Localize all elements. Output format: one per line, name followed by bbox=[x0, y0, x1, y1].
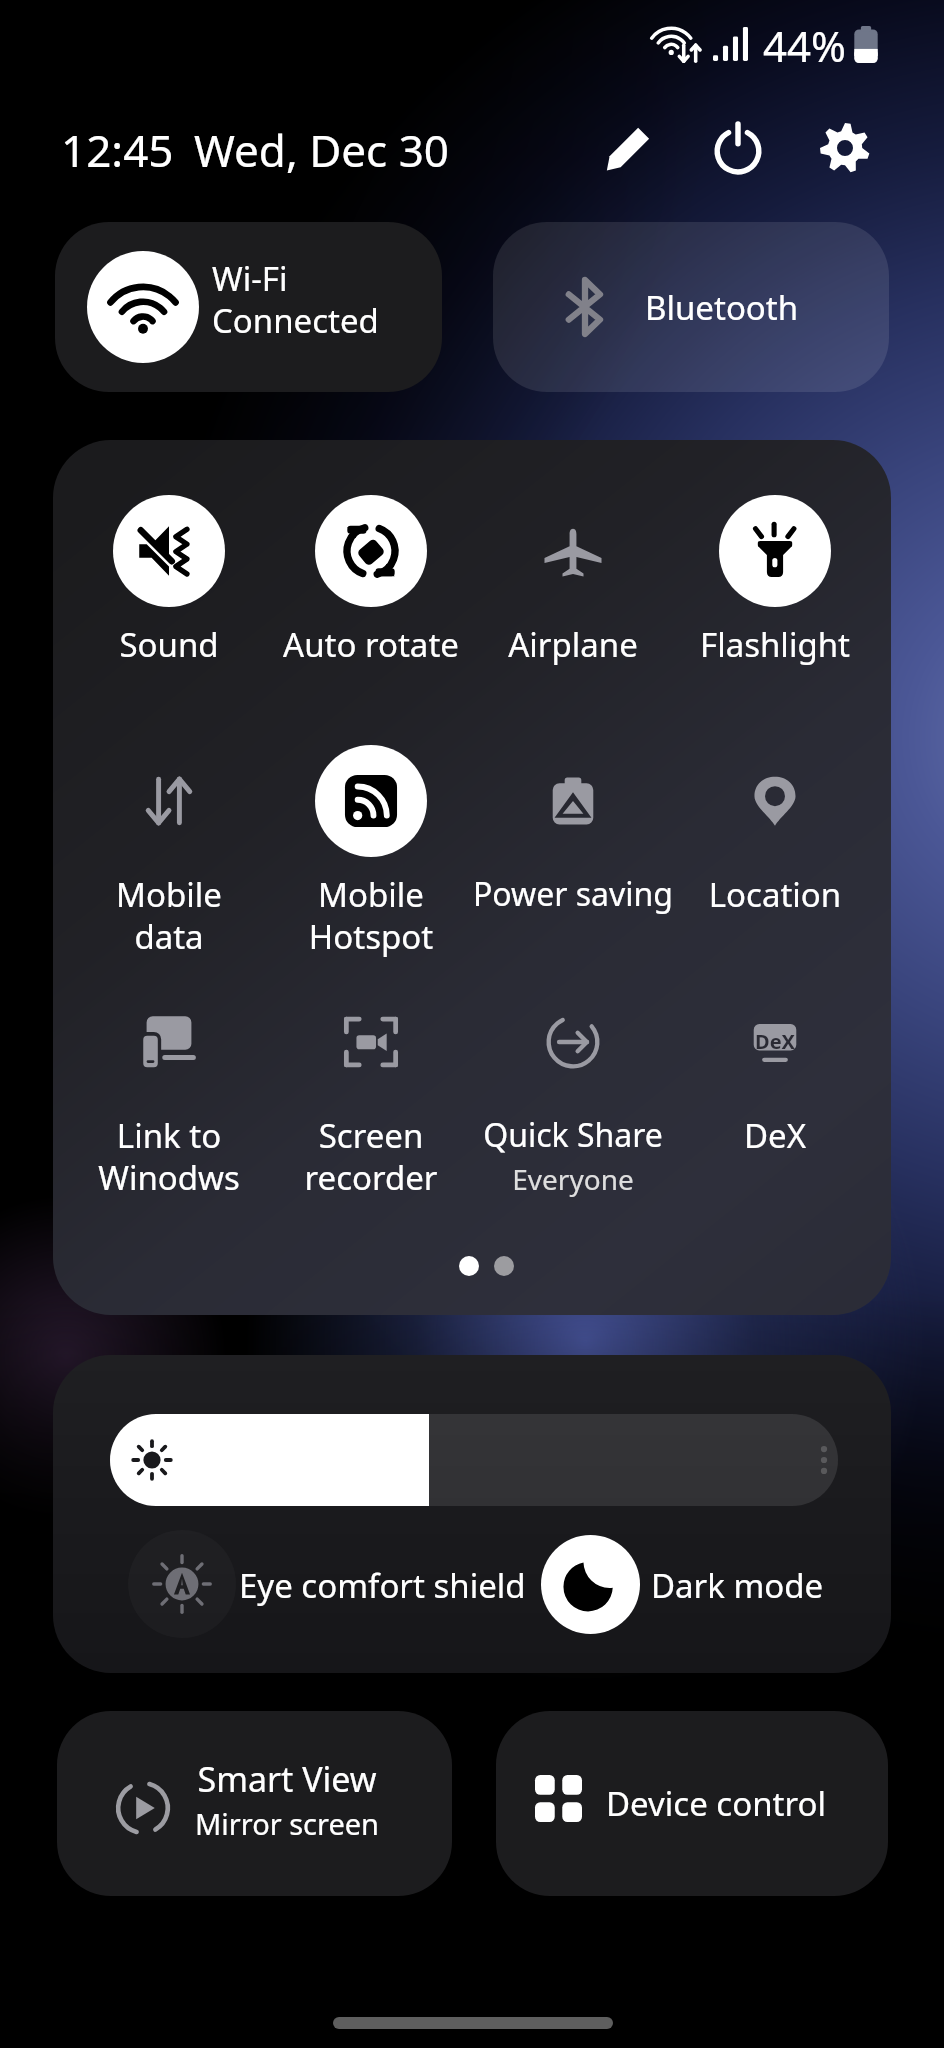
staticText: 12:45 bbox=[61, 120, 221, 180]
staticText: Mirror screen bbox=[167, 1804, 407, 1843]
staticText: Airplane bbox=[458, 622, 688, 667]
button[interactable]: Edit quick settings bbox=[580, 100, 676, 196]
button[interactable] bbox=[270, 495, 472, 685]
staticText: Location bbox=[660, 872, 890, 917]
staticText: Dark mode bbox=[651, 1563, 866, 1608]
staticText: Bluetooth bbox=[645, 285, 885, 330]
staticText: Mobile Hotspot bbox=[256, 872, 486, 959]
button[interactable] bbox=[674, 495, 876, 685]
staticText: Sound bbox=[54, 622, 284, 667]
button[interactable]: Wi-Fi bbox=[55, 222, 442, 392]
button[interactable]: Dark mode bbox=[536, 1530, 866, 1638]
staticText: Screen recorder bbox=[256, 1113, 486, 1200]
staticText: Mobile data bbox=[54, 872, 284, 959]
button[interactable]: Bluetooth bbox=[493, 222, 889, 392]
staticText: Device control bbox=[606, 1781, 866, 1826]
button[interactable]: Eye comfort shield bbox=[128, 1530, 558, 1638]
staticText: Power saving bbox=[458, 872, 688, 916]
button[interactable] bbox=[674, 745, 876, 935]
staticText: Auto rotate bbox=[256, 622, 486, 667]
button[interactable] bbox=[472, 745, 674, 935]
staticText: Link to Winodws bbox=[54, 1113, 284, 1200]
staticText: DeX bbox=[660, 1113, 890, 1158]
staticText: Smart View bbox=[167, 1756, 407, 1802]
staticText: 44% bbox=[763, 17, 873, 74]
button[interactable] bbox=[270, 986, 472, 1176]
button[interactable]: Settings bbox=[797, 100, 893, 196]
button[interactable] bbox=[110, 1414, 838, 1506]
staticText: Wi-Fi bbox=[212, 256, 432, 301]
button[interactable] bbox=[472, 495, 674, 685]
button[interactable]: Smart View bbox=[57, 1711, 452, 1896]
staticText: Eye comfort shield bbox=[239, 1563, 539, 1608]
staticText: DeX bbox=[695, 1028, 855, 1055]
staticText: Everyone bbox=[458, 1160, 688, 1198]
button[interactable] bbox=[270, 745, 472, 935]
staticText: Wed, Dec 30 bbox=[194, 120, 514, 180]
staticText: Flashlight bbox=[660, 622, 890, 667]
button[interactable]: Power off bbox=[690, 100, 786, 196]
button[interactable] bbox=[674, 986, 876, 1176]
staticText: Connected bbox=[212, 298, 432, 343]
button[interactable] bbox=[472, 986, 674, 1176]
button[interactable] bbox=[68, 986, 270, 1176]
button[interactable] bbox=[68, 745, 270, 935]
button[interactable]: Device control bbox=[496, 1711, 888, 1896]
staticText: Quick Share bbox=[458, 1113, 688, 1157]
button[interactable] bbox=[68, 495, 270, 685]
